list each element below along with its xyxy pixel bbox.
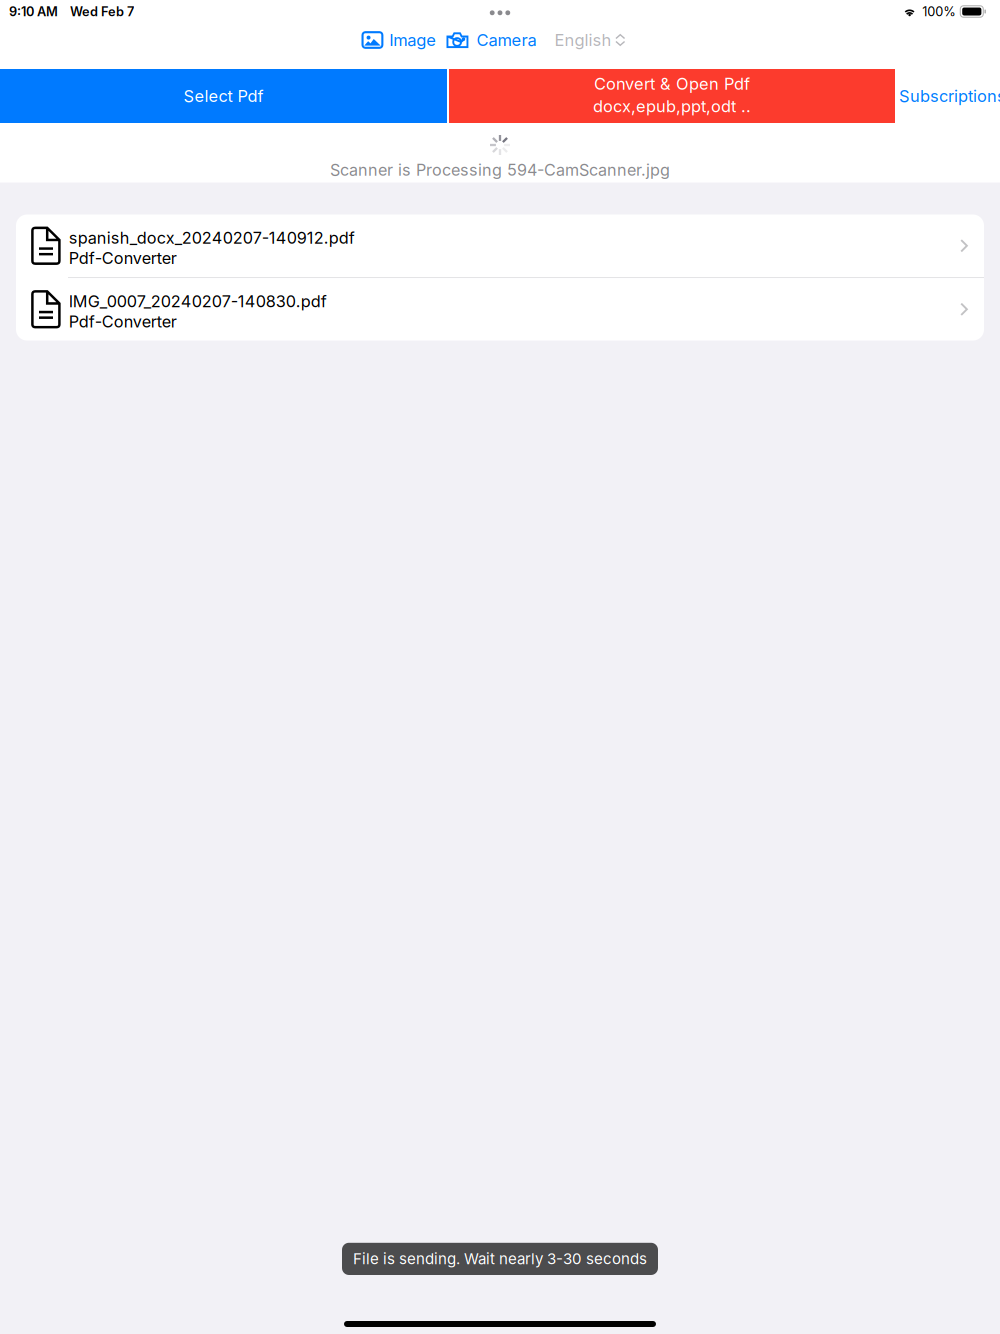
staticText: Subscriptions [899,86,1000,106]
staticText: spanish_docx_20240207-140912.pdf [69,228,355,248]
button[interactable]: spanish_docx_20240207-140912.pdf [16,214,984,277]
staticText: English [554,30,611,50]
button[interactable]: Camera [446,30,537,50]
button[interactable]: Convert & Open Pdf [449,69,895,123]
staticText: Select Pdf [183,86,263,106]
staticText: Convert & Open Pdf [594,74,750,94]
staticText: Pdf-Converter [69,312,177,331]
button[interactable]: Image [363,30,436,50]
button[interactable]: English [554,30,625,50]
button[interactable]: IMG_0007_20240207-140830.pdf [16,278,984,340]
staticText: docx,epub,ppt,odt .. [593,96,751,116]
staticText: Wed Feb 7 [70,4,134,19]
button[interactable]: Select Pdf [0,69,447,123]
staticText: File is sending. Wait nearly 3-30 second… [353,1250,647,1268]
staticText: Scanner is Processing 594-CamScanner.jpg [330,160,670,179]
button[interactable]: Subscriptions [895,69,1000,123]
staticText: Camera [477,30,537,50]
staticText: 100% [922,4,956,19]
staticText: Image [389,30,436,50]
staticText: IMG_0007_20240207-140830.pdf [69,291,327,311]
staticText: Pdf-Converter [69,248,177,268]
staticText: 9:10 AM [9,4,58,19]
